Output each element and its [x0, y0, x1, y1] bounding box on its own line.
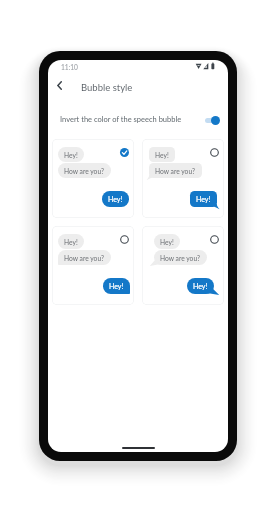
- button[interactable]: Hey!: [142, 139, 224, 218]
- button[interactable]: Invert the color of the speech bubble: [48, 105, 228, 129]
- staticText: Invert the color of the speech bubble: [60, 115, 182, 124]
- button[interactable]: Hey!: [142, 226, 224, 305]
- staticText: Hey!: [193, 282, 208, 290]
- button[interactable]: Hey!: [52, 226, 134, 305]
- button[interactable]: Hey!: [52, 139, 134, 218]
- staticText: Hey!: [108, 195, 123, 203]
- staticText: Hey!: [160, 238, 174, 246]
- staticText: Hey!: [64, 238, 78, 246]
- staticText: Hey!: [109, 282, 124, 290]
- staticText: Bubble style: [81, 82, 133, 93]
- staticText: 11:10: [61, 63, 78, 71]
- staticText: How are you?: [64, 254, 105, 262]
- staticText: Hey!: [196, 195, 211, 203]
- staticText: How are you?: [155, 167, 196, 175]
- staticText: Hey!: [155, 151, 169, 159]
- staticText: How are you?: [64, 167, 105, 175]
- button[interactable]: Back: [51, 77, 68, 94]
- staticText: How are you?: [160, 254, 201, 262]
- staticText: Hey!: [64, 151, 78, 159]
